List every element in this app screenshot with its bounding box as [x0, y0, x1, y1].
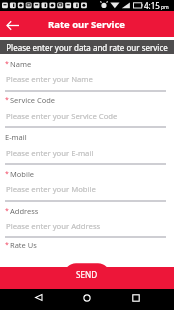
staticText: Please enter your Mobile: [6, 184, 96, 194]
staticText: 4:15: [144, 0, 160, 11]
button[interactable]: Recent apps: [119, 289, 152, 306]
staticText: Please enter your E-mail: [6, 148, 94, 158]
staticText: Please enter your Address: [6, 221, 101, 231]
staticText: Address: [10, 206, 39, 216]
button[interactable]: SEND: [0, 262, 174, 289]
staticText: *: [5, 169, 9, 179]
staticText: *: [5, 240, 9, 250]
staticText: Name: [10, 59, 32, 69]
staticText: pm: [161, 4, 169, 11]
staticText: *: [5, 59, 9, 69]
staticText: *: [5, 95, 9, 105]
staticText: Rate our Service: [48, 18, 126, 31]
staticText: Service Code: [10, 95, 56, 105]
staticText: Please enter your data and rate our serv…: [6, 42, 168, 53]
staticText: Please enter your Service Code: [6, 111, 118, 121]
staticText: *: [5, 206, 9, 216]
button[interactable]: Back: [4, 11, 25, 37]
staticText: E-mail: [5, 132, 27, 142]
staticText: Rate Us: [10, 240, 37, 250]
button[interactable]: Back: [22, 289, 55, 306]
staticText: Mobile: [10, 169, 35, 179]
staticText: Please enter your Name: [6, 74, 93, 84]
button[interactable]: Home: [70, 289, 103, 306]
staticText: SEND: [76, 269, 98, 280]
